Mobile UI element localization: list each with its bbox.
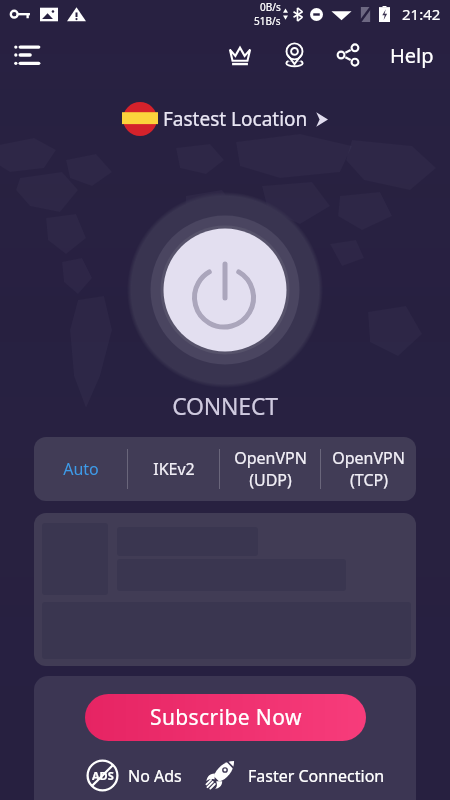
staticText: Fastest Location [163, 106, 308, 132]
staticText: (UDP) [249, 469, 292, 491]
button[interactable]: Connect [125, 190, 325, 390]
button[interactable]: OpenVPN [321, 437, 416, 501]
staticText: Help [390, 42, 434, 69]
staticText: Faster Connection [248, 765, 385, 787]
staticText: CONNECT [0, 390, 450, 421]
button[interactable]: IKEv2 [128, 437, 219, 501]
staticText: IKEv2 [153, 458, 195, 480]
staticText: 51B/s [254, 14, 281, 28]
button[interactable]: Auto [34, 437, 127, 501]
staticText: OpenVPN [332, 447, 405, 469]
staticText: (TCP) [350, 469, 388, 491]
button[interactable]: Fastest Location [116, 99, 334, 139]
staticText: OpenVPN [234, 447, 307, 469]
button[interactable]: Premium [213, 30, 267, 80]
staticText: 0B/s [260, 0, 281, 14]
staticText: ADS [92, 768, 114, 783]
staticText: Auto [63, 458, 99, 480]
staticText: 21:42 [402, 4, 441, 24]
staticText: Subscribe Now [150, 703, 302, 732]
staticText: No Ads [128, 765, 182, 787]
button[interactable]: Help [375, 30, 450, 80]
button[interactable]: Subscribe Now [85, 694, 366, 741]
button[interactable]: Menu [0, 30, 54, 80]
button[interactable]: OpenVPN [220, 437, 320, 501]
button[interactable]: Location [267, 30, 321, 80]
button[interactable]: Share [321, 30, 375, 80]
